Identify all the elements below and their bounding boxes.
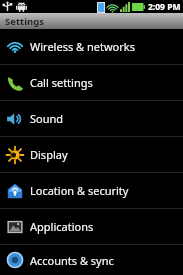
button[interactable]: Call settings	[0, 65, 183, 100]
button[interactable]: Display	[0, 137, 183, 172]
staticText: Sound	[30, 111, 64, 126]
staticText: Settings	[5, 15, 44, 28]
button[interactable]: Wireless & networks	[0, 29, 183, 64]
staticText: Applications	[30, 219, 94, 234]
button[interactable]: Accounts & sync	[0, 245, 183, 275]
staticText: Call settings	[30, 75, 93, 90]
button[interactable]: Location & security	[0, 173, 183, 208]
staticText: Display	[30, 147, 68, 162]
staticText: Accounts & sync	[30, 253, 114, 268]
staticText: 2:09 PM	[148, 1, 181, 13]
staticText: Location & security	[30, 183, 129, 198]
button[interactable]: Applications	[0, 209, 183, 244]
button[interactable]: Sound	[0, 101, 183, 136]
staticText: Wireless & networks	[30, 39, 135, 54]
